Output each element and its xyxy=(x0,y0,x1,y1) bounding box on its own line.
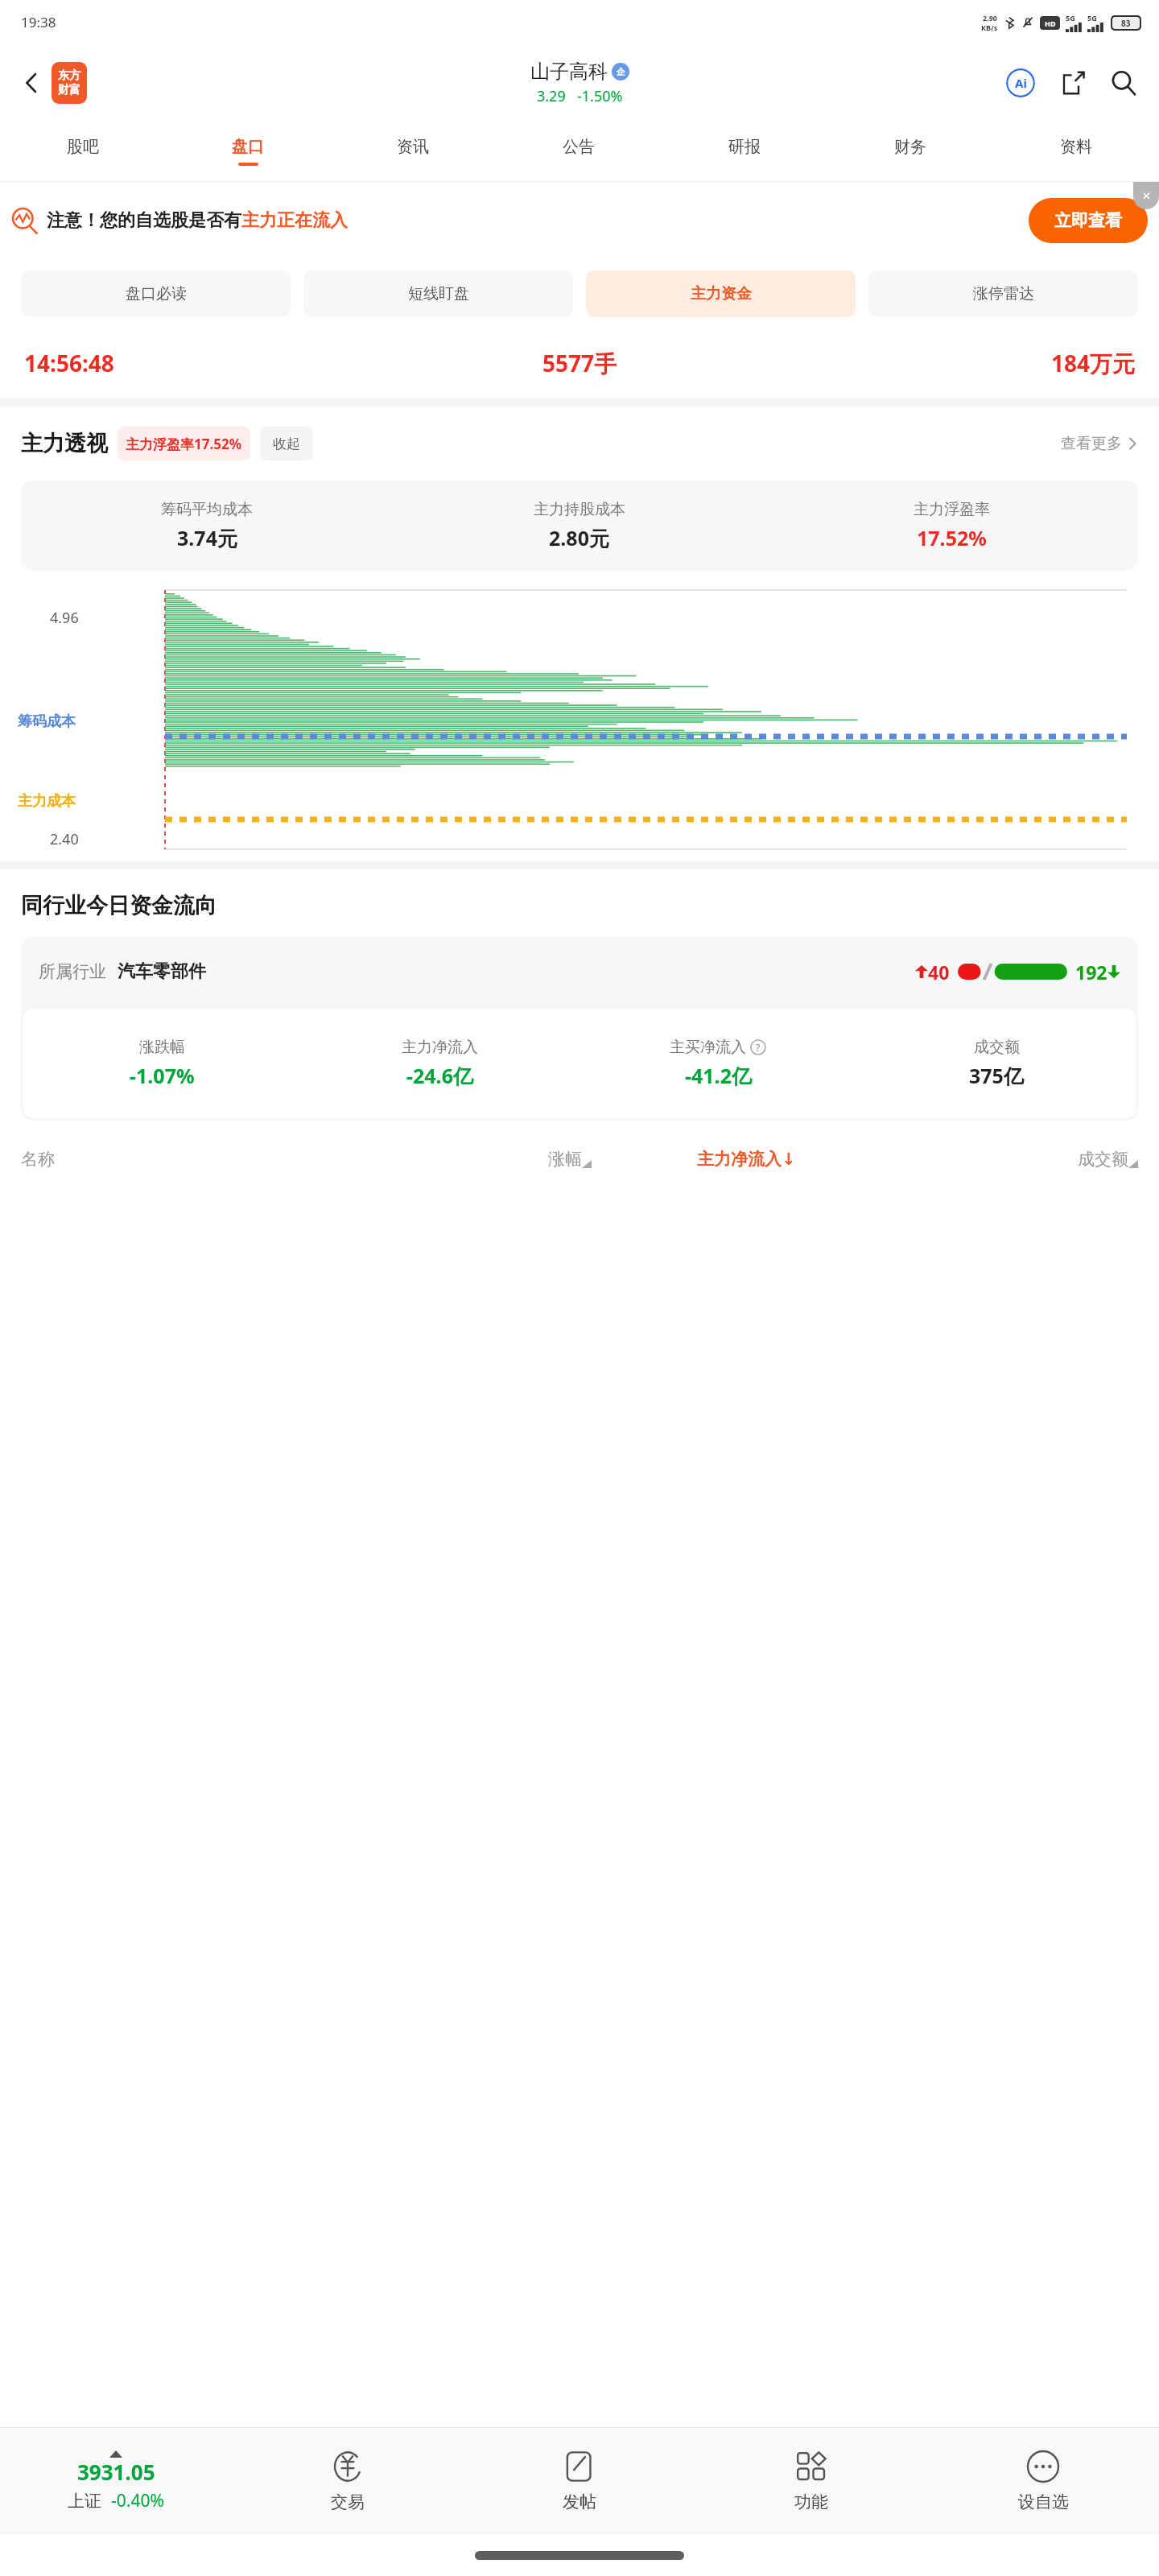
staticText: 5G xyxy=(1066,13,1075,23)
staticText: -24.6亿 xyxy=(406,1062,473,1089)
button[interactable]: 盘口必读 xyxy=(21,270,291,317)
staticText: 5G xyxy=(1087,13,1097,23)
staticText: 汽车零部件 xyxy=(118,960,206,983)
button[interactable]: 成交额 xyxy=(901,1149,1138,1170)
button[interactable]: 主力浮盈率17.52% xyxy=(126,427,242,460)
staticText: 研报 xyxy=(728,137,761,157)
staticText: Ai xyxy=(1015,75,1027,91)
staticText: 公告 xyxy=(563,137,595,157)
staticText: 财务 xyxy=(894,137,926,157)
staticText: 3.74元 xyxy=(177,524,237,551)
button[interactable]: Close xyxy=(1133,182,1159,209)
staticText: -41.2亿 xyxy=(685,1062,752,1089)
staticText: 5577手 xyxy=(394,348,765,378)
button[interactable]: Back xyxy=(13,64,52,102)
staticText: ↓ xyxy=(782,1150,796,1169)
button[interactable]: 主力资金 xyxy=(586,270,856,317)
staticText: 19:38 xyxy=(21,13,56,31)
staticText: -1.50% xyxy=(577,86,623,106)
staticText: KB/s xyxy=(981,23,998,32)
staticText: 筹码成本 xyxy=(18,712,76,731)
staticText: 涨幅 xyxy=(548,1149,582,1170)
staticText: 功能 xyxy=(794,2491,828,2512)
button[interactable]: 发帖 xyxy=(464,2428,695,2534)
staticText: 主力资金 xyxy=(691,284,752,303)
staticText: 主买净流入 xyxy=(670,1038,746,1057)
staticText: 东方 xyxy=(58,68,80,83)
staticText: 主力净流入 xyxy=(697,1149,782,1170)
button[interactable]: 资讯 xyxy=(330,121,496,181)
staticText: 成交额 xyxy=(1078,1149,1128,1170)
staticText: 2.80元 xyxy=(549,524,609,551)
staticText: 主力透视 xyxy=(21,430,108,457)
button[interactable]: 资料 xyxy=(993,121,1159,181)
staticText: 14:56:48 xyxy=(24,348,394,378)
staticText: 同行业今日资金流向 xyxy=(21,892,217,919)
button[interactable]: 主力净流入 xyxy=(592,1149,901,1170)
button[interactable]: 立即查看 xyxy=(1029,198,1148,243)
staticText: 4.96 xyxy=(50,608,79,628)
button[interactable]: 查看更多 xyxy=(1061,434,1138,453)
button[interactable]: 盘口 xyxy=(165,121,330,181)
staticText: ✕ xyxy=(1142,190,1151,202)
button[interactable]: 财务 xyxy=(827,121,993,181)
button[interactable]: 收起 xyxy=(273,427,300,460)
staticText: 主力净流入 xyxy=(402,1038,478,1057)
staticText: 3931.05 xyxy=(77,2458,155,2486)
staticText: 盘口 xyxy=(232,137,264,157)
staticText: 所属行业 xyxy=(39,961,106,982)
staticText: 名称 xyxy=(21,1149,354,1170)
button[interactable]: 公告 xyxy=(496,121,662,181)
staticText: 资讯 xyxy=(397,137,429,157)
button[interactable]: 设自选 xyxy=(927,2428,1159,2534)
staticText: 企 xyxy=(617,66,625,77)
staticText: 17.52% xyxy=(917,524,987,551)
staticText: 发帖 xyxy=(563,2491,596,2512)
staticText: 主力浮盈率 xyxy=(914,500,990,519)
staticText: 主力浮盈率17.52% xyxy=(126,435,242,453)
button[interactable]: Search xyxy=(1103,62,1145,104)
staticText: 注意！您的自选股是否有 xyxy=(47,209,241,232)
staticText: 短线盯盘 xyxy=(408,284,469,303)
staticText: 2.40 xyxy=(50,829,79,849)
button[interactable]: East Money xyxy=(52,62,87,104)
staticText: HD xyxy=(1045,19,1056,28)
staticText: 40 xyxy=(928,960,950,985)
staticText: 交易 xyxy=(331,2491,365,2512)
button[interactable]: Share xyxy=(1053,62,1095,104)
staticText: 主力持股成本 xyxy=(534,500,625,519)
staticText: -1.07% xyxy=(130,1062,195,1089)
staticText: 涨跌幅 xyxy=(139,1038,185,1057)
button[interactable]: 短线盯盘 xyxy=(303,270,573,317)
staticText: 192 xyxy=(1075,960,1107,985)
staticText: 83 xyxy=(1121,18,1131,29)
staticText: 资料 xyxy=(1060,137,1092,157)
button[interactable]: 股吧 xyxy=(0,121,165,181)
button[interactable]: 研报 xyxy=(662,121,827,181)
button[interactable]: AI xyxy=(1000,62,1041,104)
staticText: -0.40% xyxy=(111,2489,164,2512)
staticText: 2.90 xyxy=(983,13,997,23)
staticText: 3.29 xyxy=(537,86,566,106)
staticText: 财富 xyxy=(58,83,80,97)
staticText: 主力正在流入 xyxy=(241,209,348,232)
button[interactable]: 功能 xyxy=(695,2428,927,2534)
staticText: 设自选 xyxy=(1018,2491,1069,2512)
staticText: 立即查看 xyxy=(1054,210,1122,231)
staticText: 主力成本 xyxy=(18,792,76,811)
button[interactable]: 注意！您的自选股是否有 xyxy=(11,182,1148,259)
button[interactable]: 涨停雷达 xyxy=(868,270,1138,317)
staticText: 山子高科 xyxy=(530,60,608,84)
staticText: 上证 xyxy=(68,2491,101,2512)
staticText: 股吧 xyxy=(67,137,99,157)
staticText: 375亿 xyxy=(969,1062,1024,1089)
button[interactable]: 交易 xyxy=(232,2428,464,2534)
staticText: 收起 xyxy=(273,436,300,452)
staticText: 成交额 xyxy=(974,1038,1020,1057)
staticText: 盘口必读 xyxy=(126,284,187,303)
staticText: 查看更多 xyxy=(1061,434,1122,453)
staticText: 筹码平均成本 xyxy=(161,500,253,519)
button[interactable]: 所属行业 xyxy=(39,937,1120,1006)
button[interactable]: 涨幅 xyxy=(354,1149,592,1170)
staticText: ? xyxy=(756,1041,761,1054)
